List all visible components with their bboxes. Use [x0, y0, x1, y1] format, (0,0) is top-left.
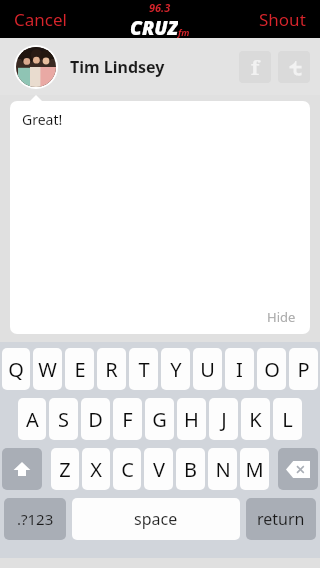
- button[interactable]: Backspace: [278, 448, 318, 490]
- staticText: Hide: [267, 308, 296, 326]
- staticText: CRUZ: [130, 15, 178, 38]
- button[interactable]: Share on Facebook: [239, 51, 271, 83]
- staticText: X: [90, 456, 102, 483]
- button[interactable]: V: [144, 448, 173, 490]
- staticText: W: [38, 356, 57, 383]
- button[interactable]: F: [113, 398, 142, 440]
- button[interactable]: return: [246, 498, 316, 540]
- staticText: V: [153, 456, 165, 483]
- staticText: S: [58, 406, 69, 433]
- button[interactable]: K: [241, 398, 270, 440]
- button[interactable]: C: [113, 448, 141, 490]
- button[interactable]: Cancel: [6, 2, 75, 37]
- button[interactable]: E: [65, 348, 94, 390]
- staticText: Cancel: [14, 8, 67, 31]
- button[interactable]: Shout: [251, 2, 314, 37]
- staticText: I: [236, 356, 243, 383]
- button[interactable]: Great!: [10, 101, 310, 334]
- staticText: f: [251, 54, 260, 81]
- staticText: T: [138, 356, 150, 383]
- button[interactable]: P: [289, 348, 318, 390]
- staticText: Z: [59, 456, 71, 483]
- button[interactable]: T: [129, 348, 158, 390]
- staticText: P: [297, 356, 310, 383]
- staticText: .?123: [17, 509, 54, 529]
- staticText: A: [26, 406, 39, 433]
- staticText: J: [221, 406, 227, 433]
- button[interactable]: Share on Twitter: [278, 51, 310, 83]
- button[interactable]: Shift: [2, 448, 42, 490]
- button[interactable]: R: [97, 348, 126, 390]
- button[interactable]: space: [72, 498, 240, 540]
- staticText: N: [215, 456, 231, 483]
- staticText: K: [249, 406, 262, 433]
- staticText: D: [88, 406, 103, 433]
- staticText: Tim Lindsey: [70, 56, 165, 78]
- button[interactable]: B: [176, 448, 205, 490]
- button[interactable]: O: [257, 348, 286, 390]
- staticText: R: [105, 356, 118, 383]
- staticText: L: [282, 406, 293, 433]
- staticText: O: [264, 356, 280, 383]
- button[interactable]: Q: [2, 348, 30, 390]
- staticText: F: [122, 406, 133, 433]
- staticText: space: [134, 508, 178, 530]
- staticText: Great!: [22, 110, 63, 129]
- button[interactable]: I: [225, 348, 254, 390]
- staticText: Y: [170, 356, 182, 383]
- staticText: C: [121, 456, 134, 483]
- button[interactable]: M: [240, 448, 269, 490]
- button[interactable]: L: [273, 398, 302, 440]
- staticText: B: [184, 456, 197, 483]
- button[interactable]: Hide: [253, 300, 310, 334]
- staticText: fm: [178, 26, 190, 38]
- button[interactable]: H: [177, 398, 206, 440]
- button[interactable]: X: [82, 448, 110, 490]
- staticText: Q: [8, 356, 24, 383]
- button[interactable]: D: [81, 398, 110, 440]
- staticText: return: [257, 508, 305, 530]
- button[interactable]: W: [33, 348, 62, 390]
- staticText: E: [74, 356, 86, 383]
- button[interactable]: Y: [161, 348, 190, 390]
- button[interactable]: A: [18, 398, 46, 440]
- staticText: Shout: [259, 8, 306, 31]
- button[interactable]: G: [145, 398, 174, 440]
- button[interactable]: S: [49, 398, 78, 440]
- button[interactable]: Profile photo: [16, 47, 56, 87]
- staticText: G: [152, 406, 167, 433]
- staticText: U: [200, 356, 215, 383]
- button[interactable]: J: [209, 398, 238, 440]
- staticText: M: [245, 456, 264, 483]
- button[interactable]: U: [193, 348, 222, 390]
- button[interactable]: Z: [51, 448, 79, 490]
- button[interactable]: .?123: [4, 498, 66, 540]
- staticText: H: [184, 406, 199, 433]
- staticText: 96.3: [149, 0, 171, 15]
- button[interactable]: N: [208, 448, 237, 490]
